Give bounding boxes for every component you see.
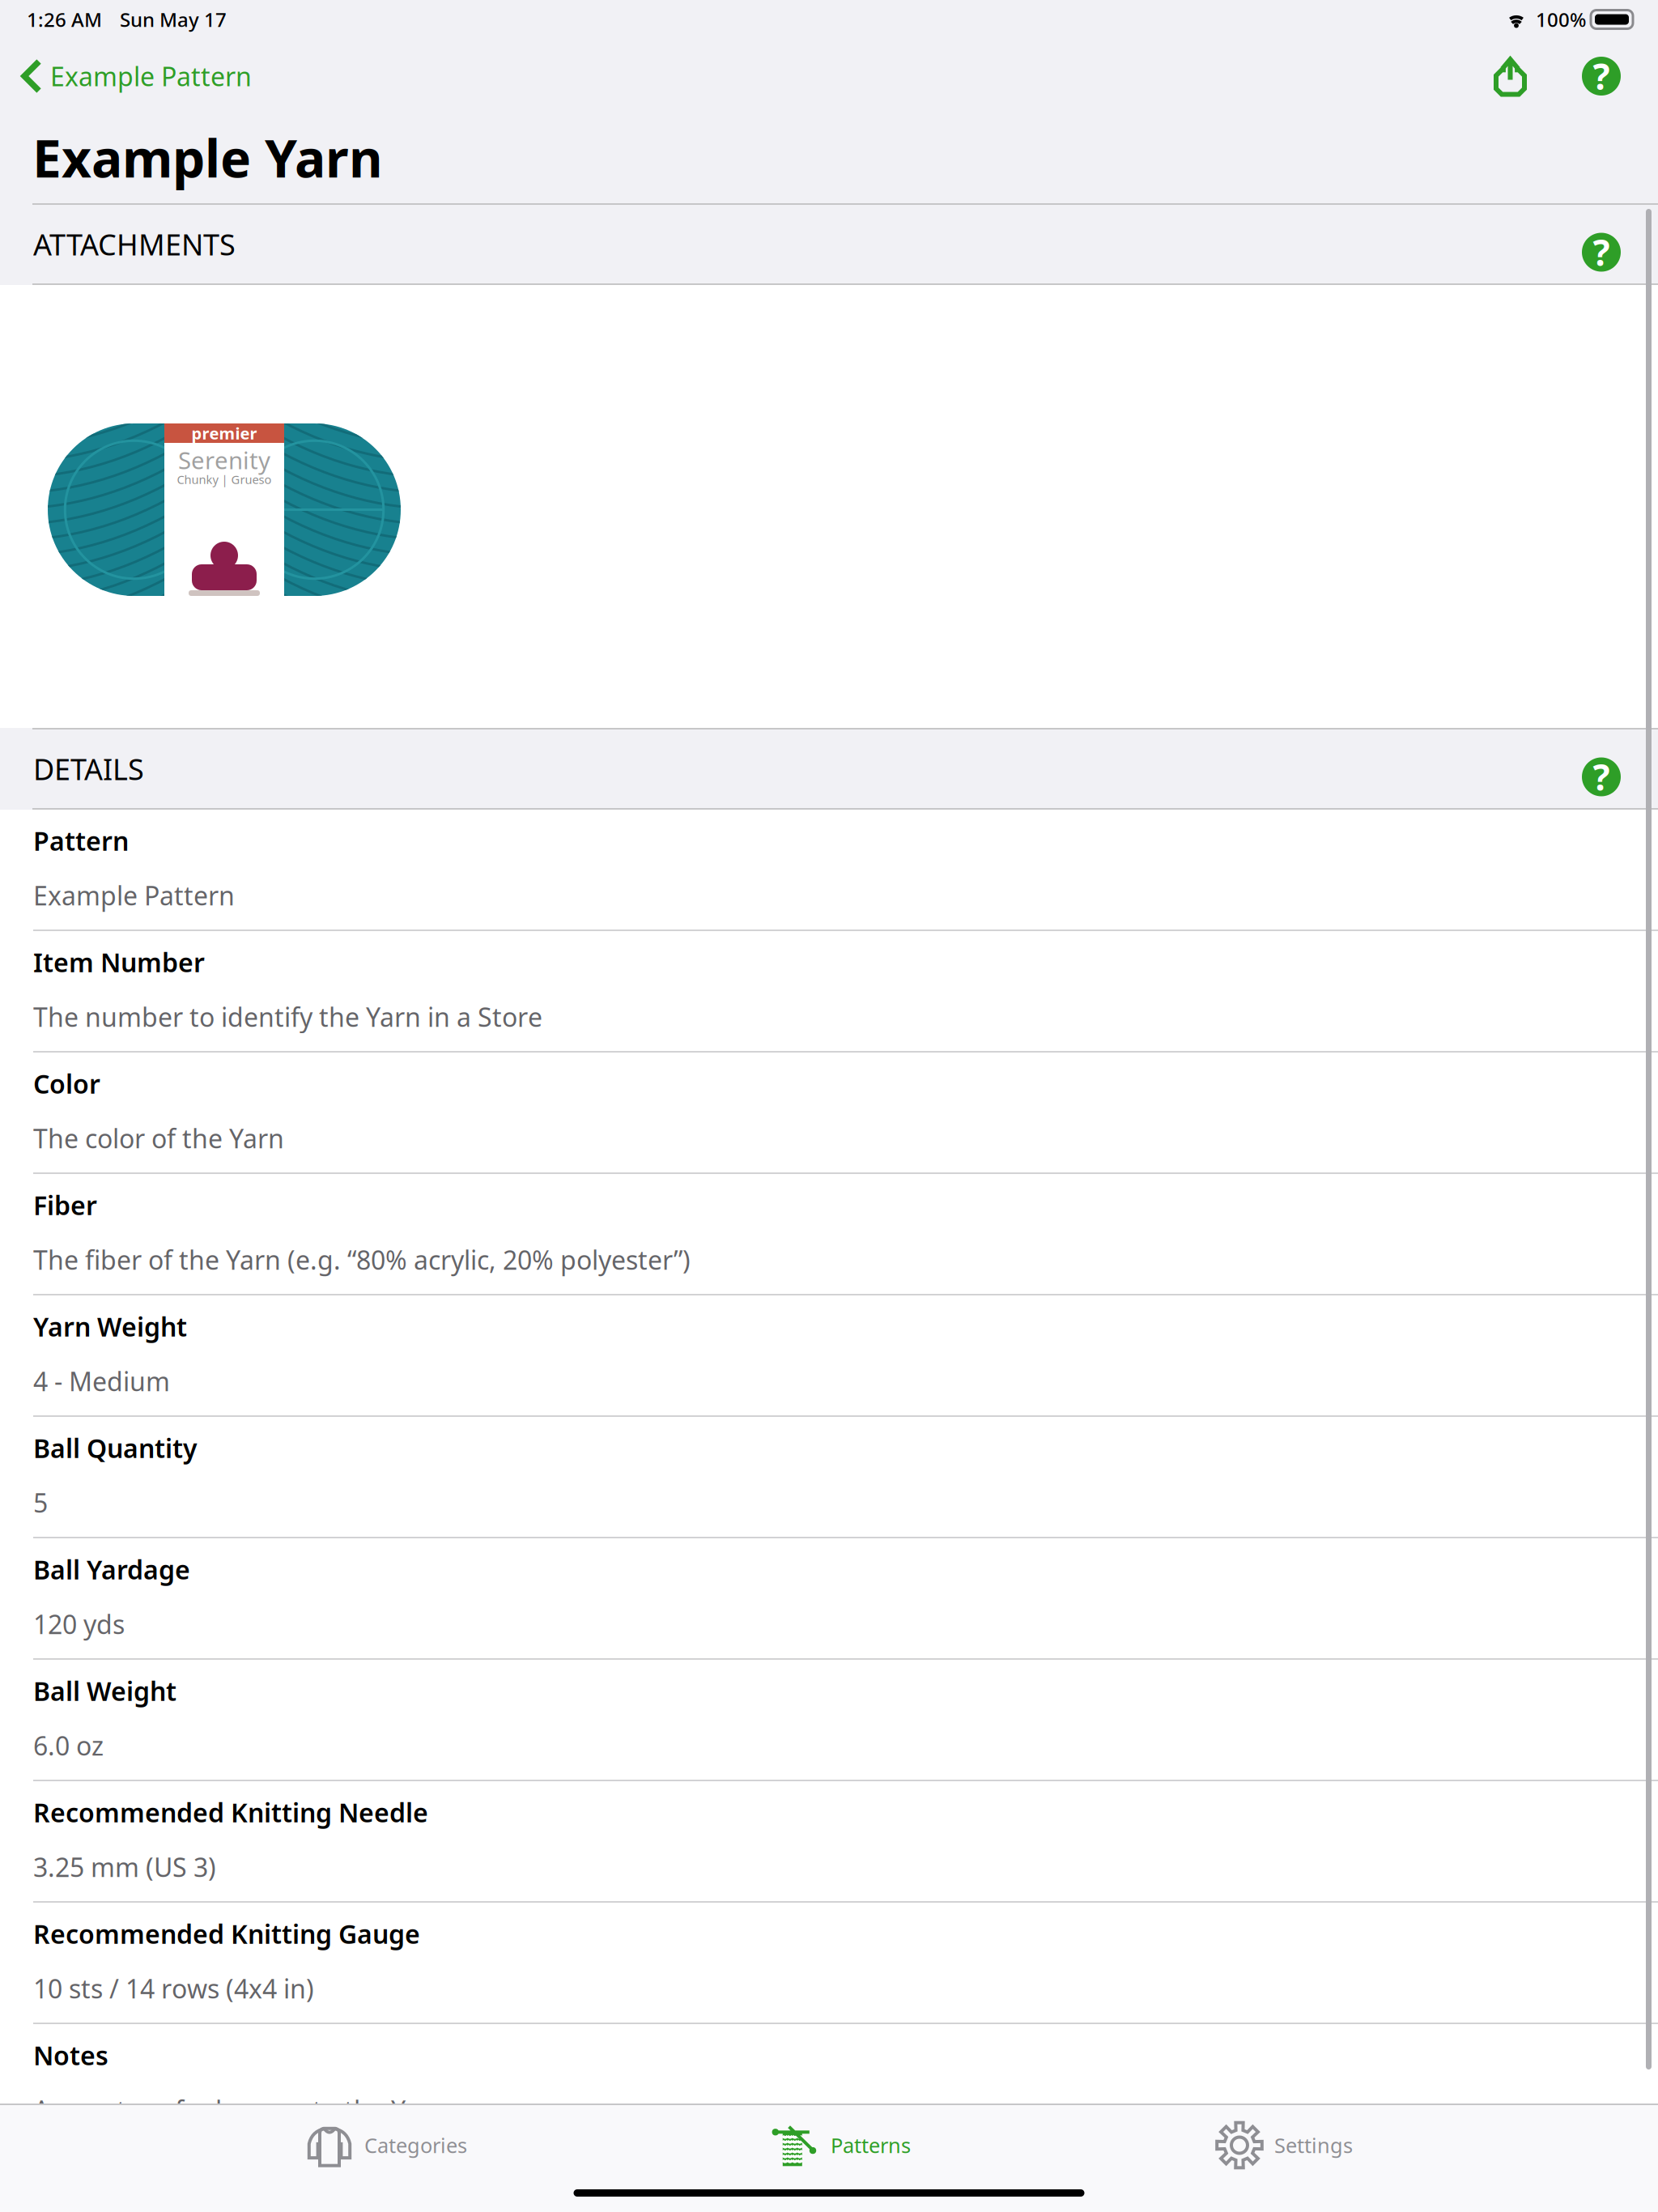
staticText: DETAILS: [33, 749, 144, 788]
button[interactable]: Patterns: [772, 2104, 911, 2187]
staticText: Example Pattern: [50, 59, 252, 93]
button[interactable]: Categories: [305, 2104, 467, 2187]
button[interactable]: Recommended Knitting Gauge: [0, 1903, 1658, 2024]
staticText: 100%: [1536, 7, 1586, 32]
staticText: Yarn Weight: [33, 1309, 187, 1344]
button[interactable]: Example Pattern: [0, 39, 263, 113]
button[interactable]: Ball Yardage: [0, 1538, 1658, 1660]
staticText: Any notes of relevance to the Yarn: [33, 2093, 446, 2127]
button[interactable]: Help: [1582, 741, 1621, 796]
staticText: ATTACHMENTS: [33, 225, 236, 263]
staticText: 120 yds: [33, 1607, 125, 1641]
button[interactable]: Notes: [0, 2024, 1658, 2146]
staticText: The number to identify the Yarn in a Sto…: [33, 1000, 542, 1034]
staticText: Pattern: [33, 823, 129, 858]
staticText: Ball Weight: [33, 1674, 176, 1708]
staticText: ?: [1593, 52, 1610, 100]
staticText: 4 - Medium: [33, 1364, 170, 1398]
button[interactable]: Fiber: [0, 1174, 1658, 1295]
staticText: The color of the Yarn: [33, 1121, 284, 1155]
button[interactable]: Ball Quantity: [0, 1417, 1658, 1538]
staticText: Color: [33, 1066, 100, 1101]
staticText: Notes: [33, 2038, 108, 2072]
staticText: 5: [33, 1485, 48, 1520]
staticText: ?: [1593, 753, 1610, 801]
staticText: Chunky | Grueso: [177, 471, 272, 487]
staticText: Patterns: [831, 2132, 911, 2159]
staticText: Settings: [1274, 2132, 1353, 2159]
staticText: Recommended Knitting Gauge: [33, 1916, 420, 1951]
staticText: Categories: [364, 2132, 467, 2159]
staticText: 6.0 oz: [33, 1728, 104, 1763]
staticText: Example Pattern: [33, 878, 235, 912]
staticText: Recommended Knitting Needle: [33, 1795, 428, 1829]
button[interactable]: Ball Weight: [0, 1660, 1658, 1781]
button[interactable]: Pattern: [0, 810, 1658, 931]
staticText: Ball Yardage: [33, 1552, 190, 1587]
staticText: Serenity: [178, 444, 270, 476]
button[interactable]: Help: [1565, 39, 1658, 113]
staticText: The fiber of the Yarn (e.g. “80% acrylic…: [33, 1242, 691, 1277]
staticText: Ball Quantity: [33, 1431, 198, 1465]
staticText: Sun May 17: [120, 7, 227, 32]
button[interactable]: Share: [1475, 39, 1565, 113]
button[interactable]: Recommended Knitting Needle: [0, 1781, 1658, 1903]
staticText: 1:26 AM: [27, 7, 102, 32]
button[interactable]: Settings: [1215, 2104, 1353, 2187]
staticText: Fiber: [33, 1188, 97, 1222]
staticText: premier: [191, 422, 257, 444]
button[interactable]: Help: [1582, 217, 1621, 272]
staticText: Example Yarn: [32, 123, 383, 192]
staticText: 10 sts / 14 rows (4x4 in): [33, 1971, 314, 2006]
button[interactable]: Color: [0, 1053, 1658, 1174]
button[interactable]: Yarn Weight: [0, 1295, 1658, 1417]
button[interactable]: Item Number: [0, 931, 1658, 1053]
staticText: 3.25 mm (US 3): [33, 1850, 216, 1884]
staticText: Item Number: [33, 945, 205, 979]
staticText: ?: [1593, 229, 1610, 276]
